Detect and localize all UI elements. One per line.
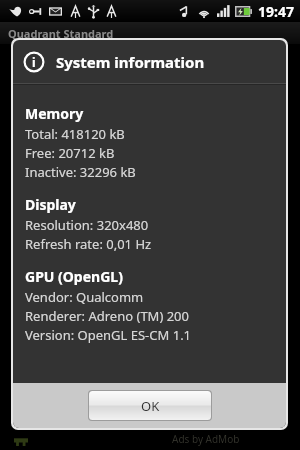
- staticText: i: [32, 54, 36, 70]
- staticText: Ads by AdMob: [172, 432, 240, 446]
- staticText: Total: 418120 kB: [25, 125, 125, 143]
- staticText: Free: 20712 kB: [25, 144, 115, 162]
- staticText: Inactive: 32296 kB: [25, 163, 136, 181]
- staticText: OK: [141, 397, 160, 415]
- button[interactable]: OK: [89, 391, 211, 420]
- staticText: Refresh rate: 0,01 Hz: [25, 235, 152, 253]
- staticText: GPU (OpenGL): [25, 267, 123, 286]
- staticText: Resolution: 320x480: [25, 216, 149, 234]
- staticText: System information: [56, 52, 205, 72]
- staticText: Display: [25, 195, 76, 214]
- staticText: Vendor: Qualcomm: [25, 288, 144, 306]
- staticText: 19:47: [258, 2, 294, 21]
- staticText: Quadrant Standard: [8, 26, 114, 41]
- staticText: Memory: [25, 104, 84, 123]
- staticText: Renderer: Adreno (TM) 200: [25, 307, 189, 325]
- staticText: Version: OpenGL ES-CM 1.1: [25, 326, 192, 344]
